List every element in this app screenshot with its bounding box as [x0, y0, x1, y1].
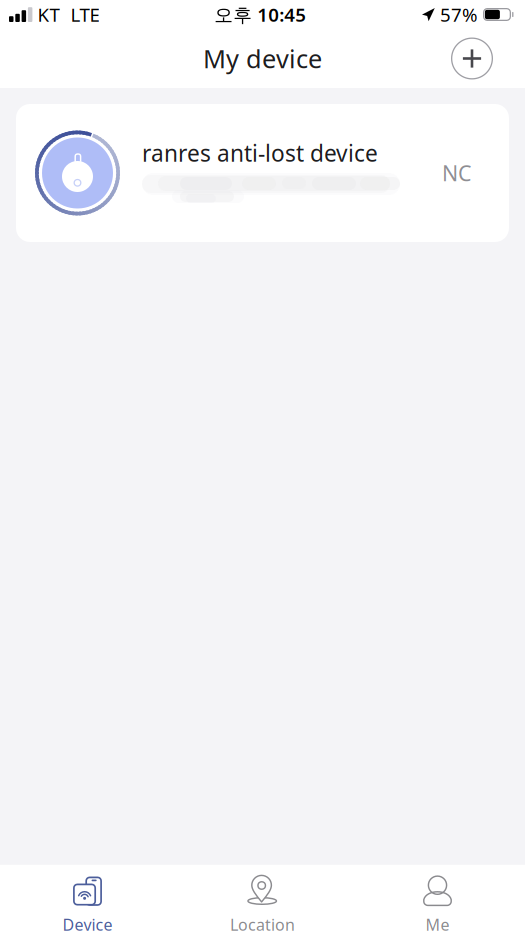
staticText: Location — [230, 914, 295, 933]
staticText: ranres anti-lost device — [142, 138, 378, 168]
staticText: 오후 10:45 — [214, 2, 306, 27]
button[interactable]: Device — [0, 865, 175, 933]
staticText: NC — [442, 159, 471, 187]
staticText: LTE — [70, 2, 99, 27]
staticText: Device — [62, 914, 112, 933]
staticText: My device — [203, 42, 322, 75]
button[interactable]: Add device — [448, 34, 496, 82]
button[interactable]: ranres anti-lost device — [16, 104, 509, 242]
button[interactable]: Me — [350, 865, 525, 933]
staticText: 57% — [440, 2, 478, 27]
button[interactable]: Location — [175, 865, 350, 933]
staticText: Me — [425, 914, 449, 933]
staticText: KT — [37, 2, 59, 27]
